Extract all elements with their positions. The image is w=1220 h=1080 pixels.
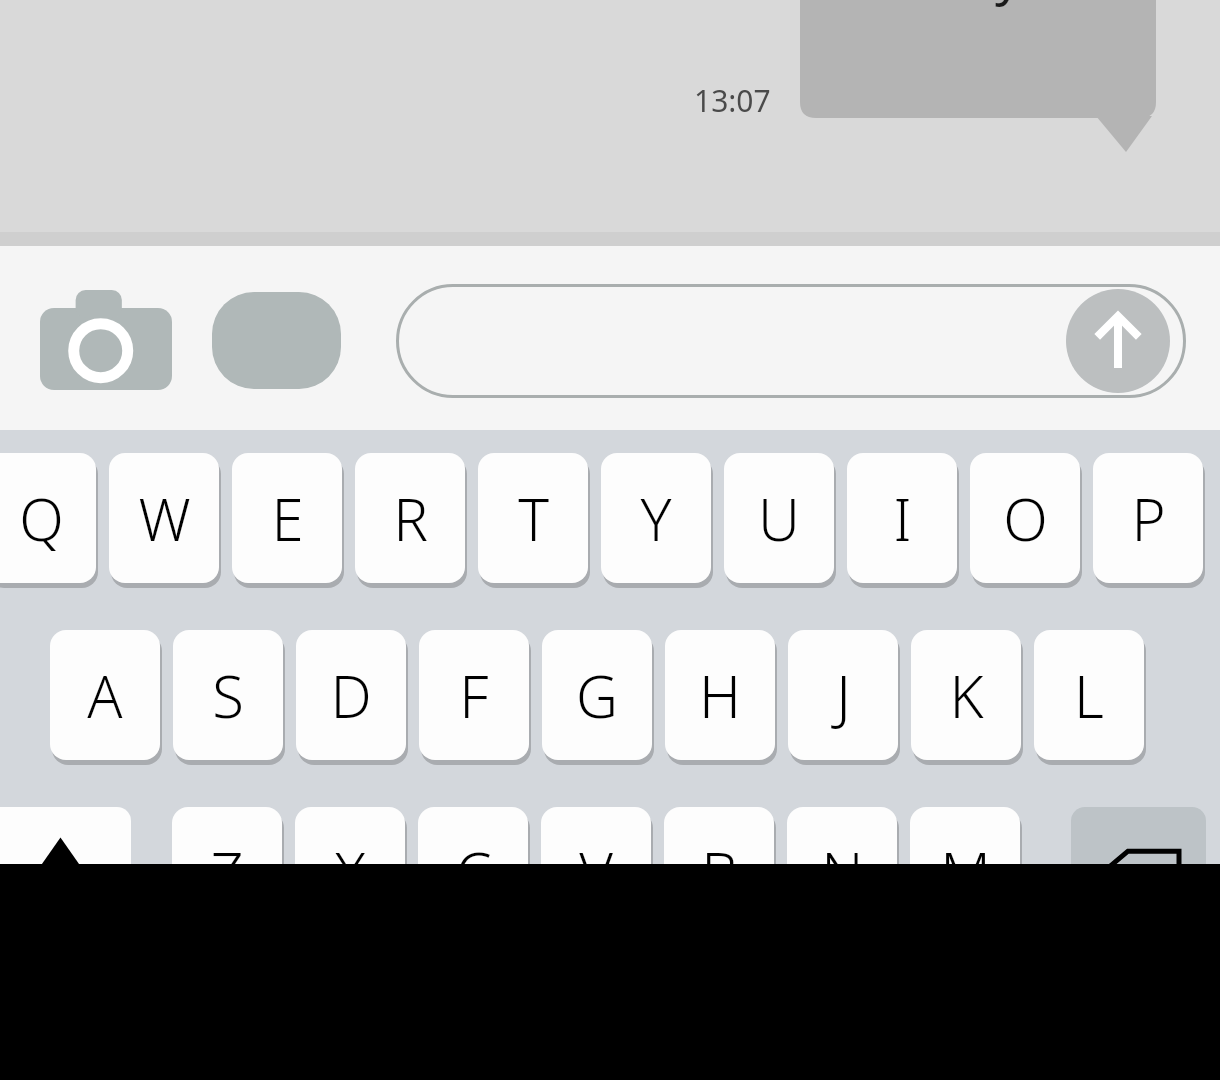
- staticText: hey: [800, 0, 1156, 9]
- button[interactable]: [800, 0, 1156, 153]
- staticText: M: [940, 833, 991, 912]
- staticText: U: [758, 479, 800, 558]
- staticText: X: [334, 833, 366, 912]
- button[interactable]: Camera: [40, 290, 172, 390]
- button[interactable]: R: [355, 453, 465, 583]
- button[interactable]: X: [295, 807, 405, 937]
- staticText: C: [455, 833, 492, 912]
- button[interactable]: Send: [1066, 289, 1170, 393]
- button[interactable]: E: [232, 453, 342, 583]
- staticText: F: [459, 656, 489, 735]
- staticText: W: [138, 479, 191, 558]
- button[interactable]: Send: [396, 284, 1186, 398]
- staticText: J: [836, 656, 851, 735]
- button[interactable]: J: [788, 630, 898, 760]
- staticText: O: [1003, 479, 1048, 558]
- staticText: R: [393, 479, 428, 558]
- button[interactable]: H: [665, 630, 775, 760]
- button[interactable]: B: [664, 807, 774, 937]
- button[interactable]: F: [419, 630, 529, 760]
- button[interactable]: W: [109, 453, 219, 583]
- button[interactable]: V: [541, 807, 651, 937]
- button[interactable]: Z: [172, 807, 282, 937]
- staticText: G: [576, 656, 618, 735]
- button[interactable]: L: [1034, 630, 1144, 760]
- staticText: E: [271, 479, 304, 558]
- button[interactable]: Stickers: [212, 292, 341, 389]
- staticText: A: [87, 656, 123, 735]
- staticText: Y: [640, 479, 672, 558]
- staticText: L: [1074, 656, 1104, 735]
- button[interactable]: P: [1093, 453, 1203, 583]
- staticText: D: [330, 656, 372, 735]
- button[interactable]: Y: [601, 453, 711, 583]
- staticText: H: [699, 656, 741, 735]
- button[interactable]: K: [911, 630, 1021, 760]
- button[interactable]: T: [478, 453, 588, 583]
- button[interactable]: U: [724, 453, 834, 583]
- button[interactable]: D: [296, 630, 406, 760]
- button[interactable]: C: [418, 807, 528, 937]
- button[interactable]: Backspace: [1071, 807, 1206, 937]
- staticText: S: [212, 656, 244, 735]
- button[interactable]: M: [910, 807, 1020, 937]
- staticText: K: [949, 656, 984, 735]
- staticText: P: [1131, 479, 1166, 558]
- button[interactable]: A: [50, 630, 160, 760]
- button[interactable]: O: [970, 453, 1080, 583]
- staticText: V: [579, 833, 613, 912]
- button[interactable]: N: [787, 807, 897, 937]
- button[interactable]: G: [542, 630, 652, 760]
- staticText: T: [518, 479, 549, 558]
- staticText: N: [821, 833, 864, 912]
- button[interactable]: Shift: [0, 807, 131, 937]
- button[interactable]: I: [847, 453, 957, 583]
- staticText: B: [701, 833, 738, 912]
- staticText: I: [893, 479, 912, 558]
- staticText: Q: [19, 479, 64, 558]
- button[interactable]: S: [173, 630, 283, 760]
- staticText: 13:07: [694, 80, 771, 121]
- button[interactable]: Q: [0, 453, 96, 583]
- staticText: Z: [210, 833, 244, 912]
